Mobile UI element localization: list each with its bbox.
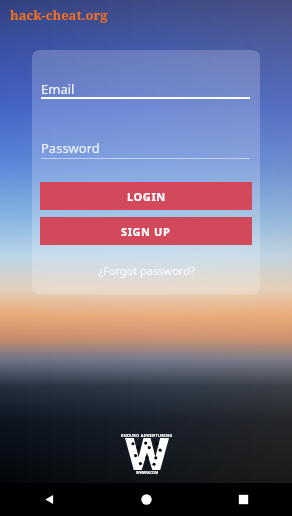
button[interactable]: ¿Forgot password? — [80, 260, 212, 280]
button[interactable]: SIGN UP — [40, 217, 252, 245]
button[interactable]: Recents — [195, 483, 292, 516]
staticText: WWWW.COM — [136, 470, 159, 475]
staticText: LOGIN — [127, 189, 166, 204]
staticText: ENDURO ADVENTURING — [121, 433, 173, 438]
staticText: hack-cheat.org — [10, 6, 108, 24]
staticText: Password — [41, 139, 100, 157]
button[interactable]: Back — [0, 483, 98, 516]
button[interactable]: Home — [98, 483, 195, 516]
staticText: Email — [41, 80, 75, 98]
staticText: SIGN UP — [121, 224, 171, 239]
staticText: ¿Forgot password? — [98, 263, 195, 278]
button[interactable]: LOGIN — [40, 182, 252, 210]
